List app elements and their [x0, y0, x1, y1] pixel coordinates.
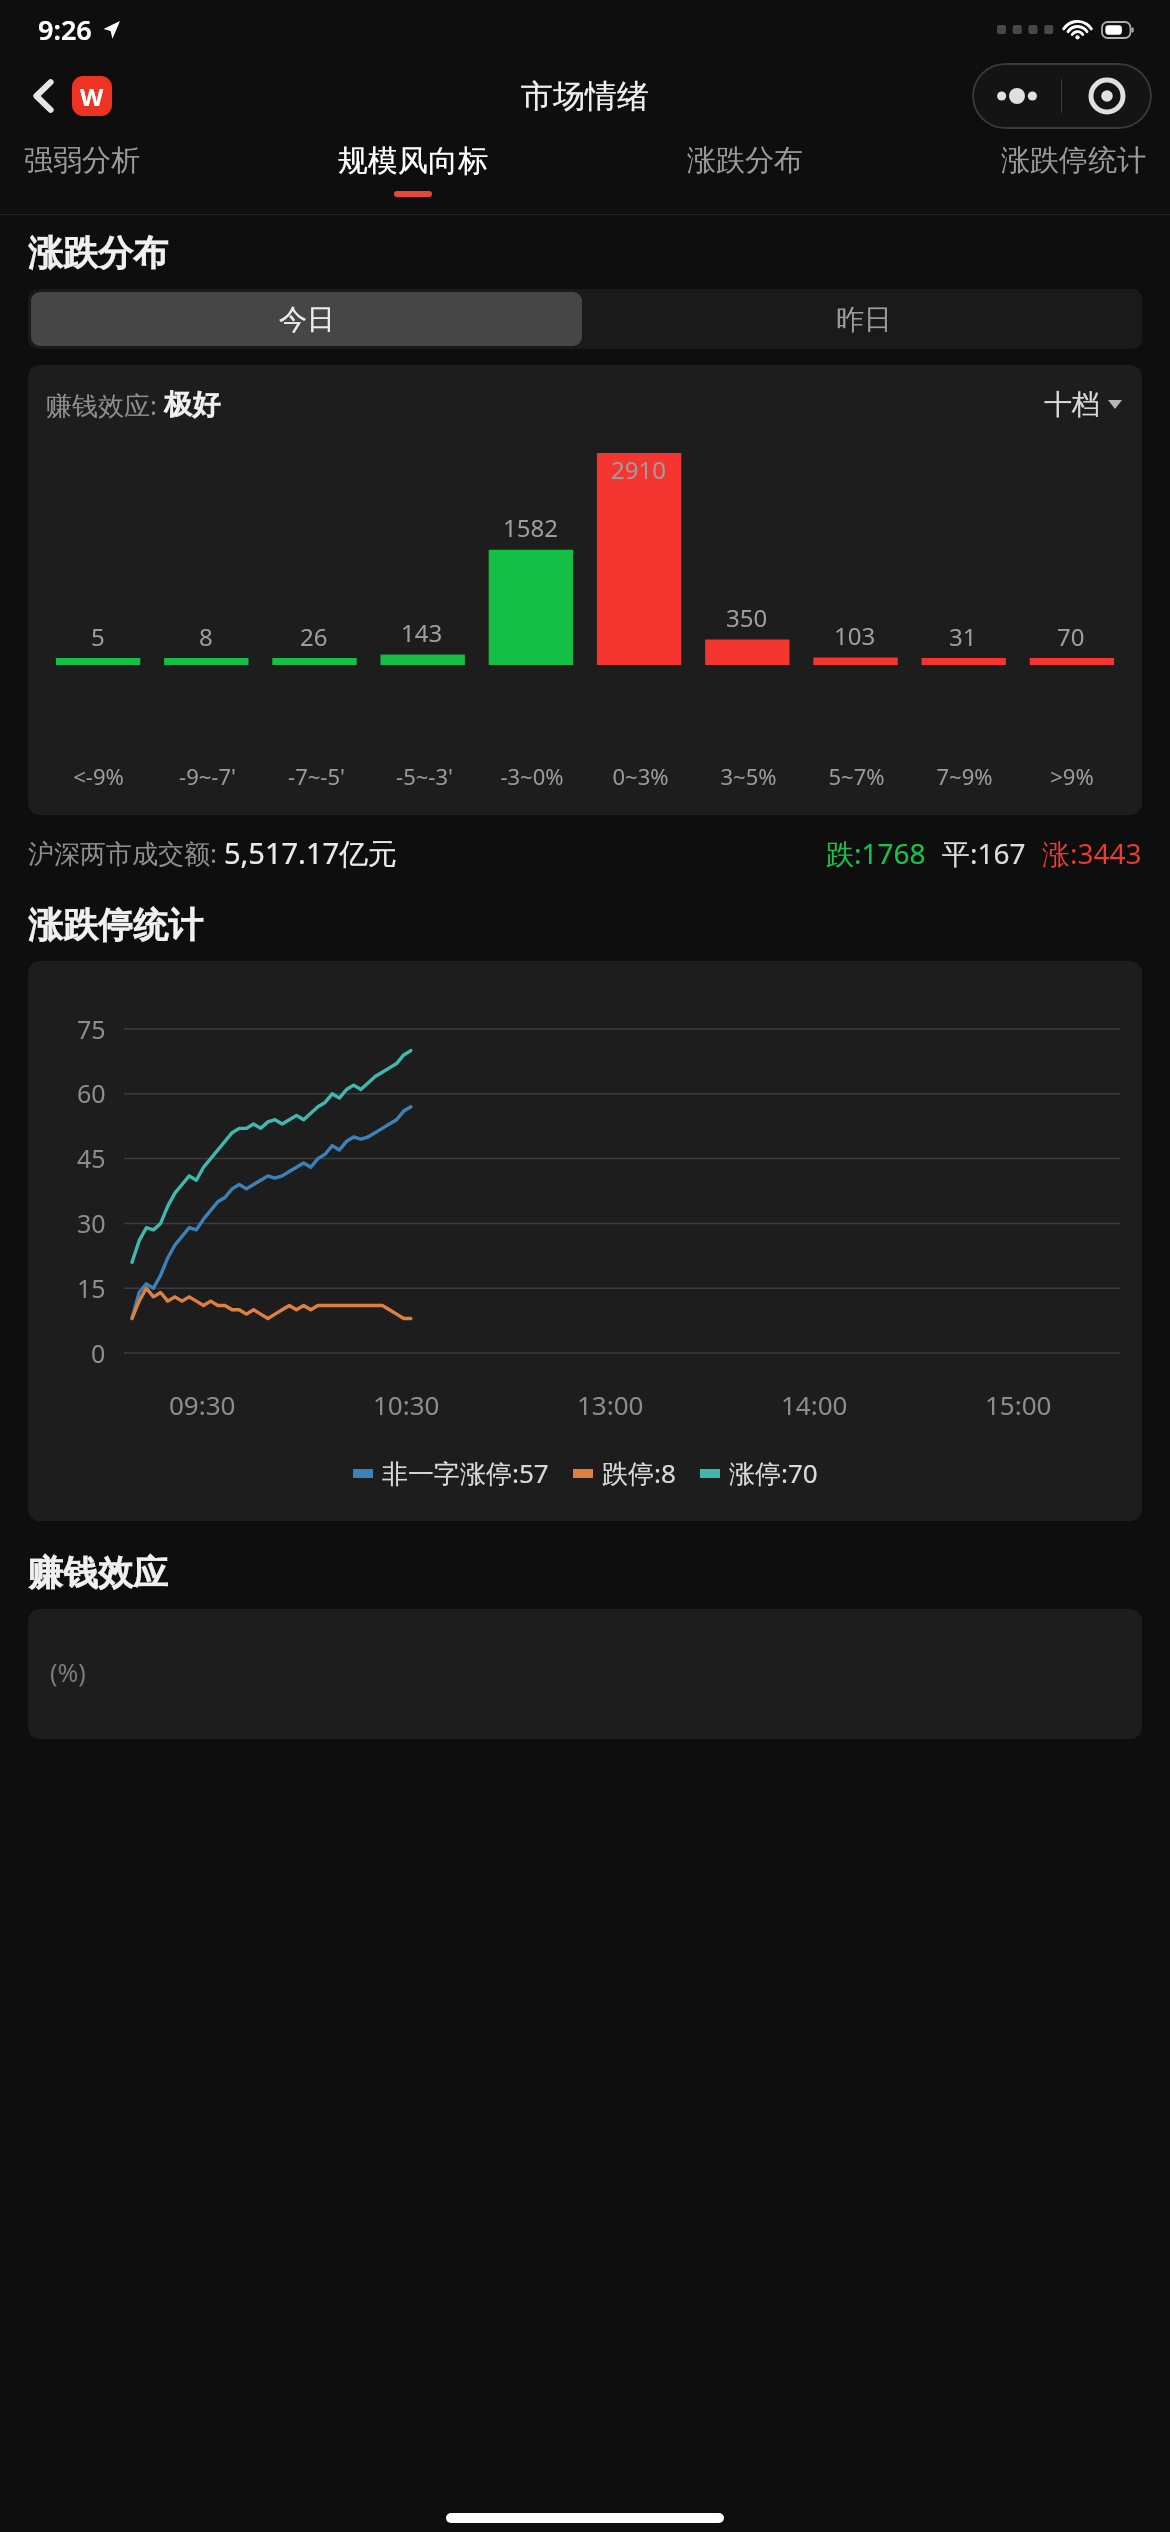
staticText: 十档	[1044, 387, 1100, 422]
staticText: 45	[77, 1141, 106, 1175]
staticText: 赚钱效应	[28, 1551, 168, 1595]
button[interactable]: 规模风向标	[328, 134, 498, 205]
staticText: 跌:1768	[826, 834, 926, 872]
staticText: 跌停:8	[602, 1455, 676, 1491]
staticText: 涨跌分布	[28, 231, 168, 275]
staticText: 14:00	[781, 1387, 848, 1422]
staticText: -3~0%	[500, 761, 564, 791]
button[interactable]: 涨跌分布	[677, 134, 813, 204]
staticText: W	[80, 80, 104, 113]
staticText: 15	[77, 1271, 106, 1305]
staticText: 3~5%	[720, 761, 777, 791]
staticText: 市场情绪	[521, 76, 649, 116]
staticText: 涨停:70	[729, 1455, 818, 1491]
staticText: 5	[91, 620, 105, 653]
staticText: 7~9%	[936, 761, 993, 791]
staticText: 涨跌分布	[687, 142, 803, 179]
staticText: 沪深两市成交额:	[28, 835, 224, 871]
button[interactable]: 十档	[1038, 381, 1128, 428]
staticText: 平:167	[942, 834, 1026, 872]
staticText: 26	[300, 620, 328, 653]
staticText: 涨跌停统计	[1001, 142, 1146, 179]
button[interactable]: 强弱分析	[14, 134, 150, 204]
staticText: 0~3%	[612, 761, 669, 791]
staticText: 75	[77, 1012, 106, 1046]
button[interactable]: 非一字涨停:57	[353, 1455, 549, 1491]
button[interactable]: 跌停:8	[573, 1455, 676, 1491]
staticText: 143	[401, 616, 443, 649]
staticText: 60	[77, 1076, 106, 1110]
staticText: 今日	[279, 302, 335, 337]
button[interactable]: Close	[1062, 63, 1152, 129]
staticText: 70	[1057, 620, 1085, 653]
staticText: <-9%	[73, 761, 124, 791]
button[interactable]: 涨跌停统计	[991, 134, 1156, 204]
staticText: 10:30	[373, 1387, 440, 1422]
staticText: 0	[91, 1336, 106, 1370]
button[interactable]: 昨日	[585, 289, 1142, 349]
staticText: 09:30	[169, 1387, 236, 1422]
staticText: 2910	[611, 453, 666, 486]
staticText: 30	[77, 1206, 106, 1240]
staticText: 31	[949, 620, 977, 653]
staticText: >9%	[1050, 761, 1094, 791]
button[interactable]: WeChat	[72, 76, 112, 116]
staticText: 昨日	[836, 302, 892, 337]
button[interactable]: 涨停:70	[700, 1455, 818, 1491]
staticText: 赚钱效应:	[46, 387, 164, 423]
staticText: 9:26	[38, 11, 92, 48]
staticText: -9~-7'	[179, 761, 236, 791]
staticText: (%)	[50, 1655, 86, 1689]
staticText: 5,517.17亿元	[224, 833, 398, 873]
staticText: 非一字涨停:57	[382, 1455, 549, 1491]
button[interactable]: More	[972, 63, 1061, 129]
staticText: 103	[834, 619, 876, 652]
staticText: 1582	[503, 511, 558, 544]
staticText: -7~-5'	[288, 761, 345, 791]
staticText: 15:00	[985, 1387, 1052, 1422]
staticText: 规模风向标	[338, 142, 488, 180]
button[interactable]: 今日	[31, 292, 582, 346]
staticText: 涨跌停统计	[28, 903, 203, 947]
staticText: 350	[726, 601, 768, 634]
staticText: 强弱分析	[24, 142, 140, 179]
staticText: 8	[199, 620, 213, 653]
button[interactable]: Back	[20, 70, 66, 122]
staticText: 涨:3443	[1042, 834, 1142, 872]
staticText: -5~-3'	[396, 761, 453, 791]
staticText: 13:00	[577, 1387, 644, 1422]
staticText: 5~7%	[828, 761, 885, 791]
staticText: 极好	[164, 387, 220, 422]
